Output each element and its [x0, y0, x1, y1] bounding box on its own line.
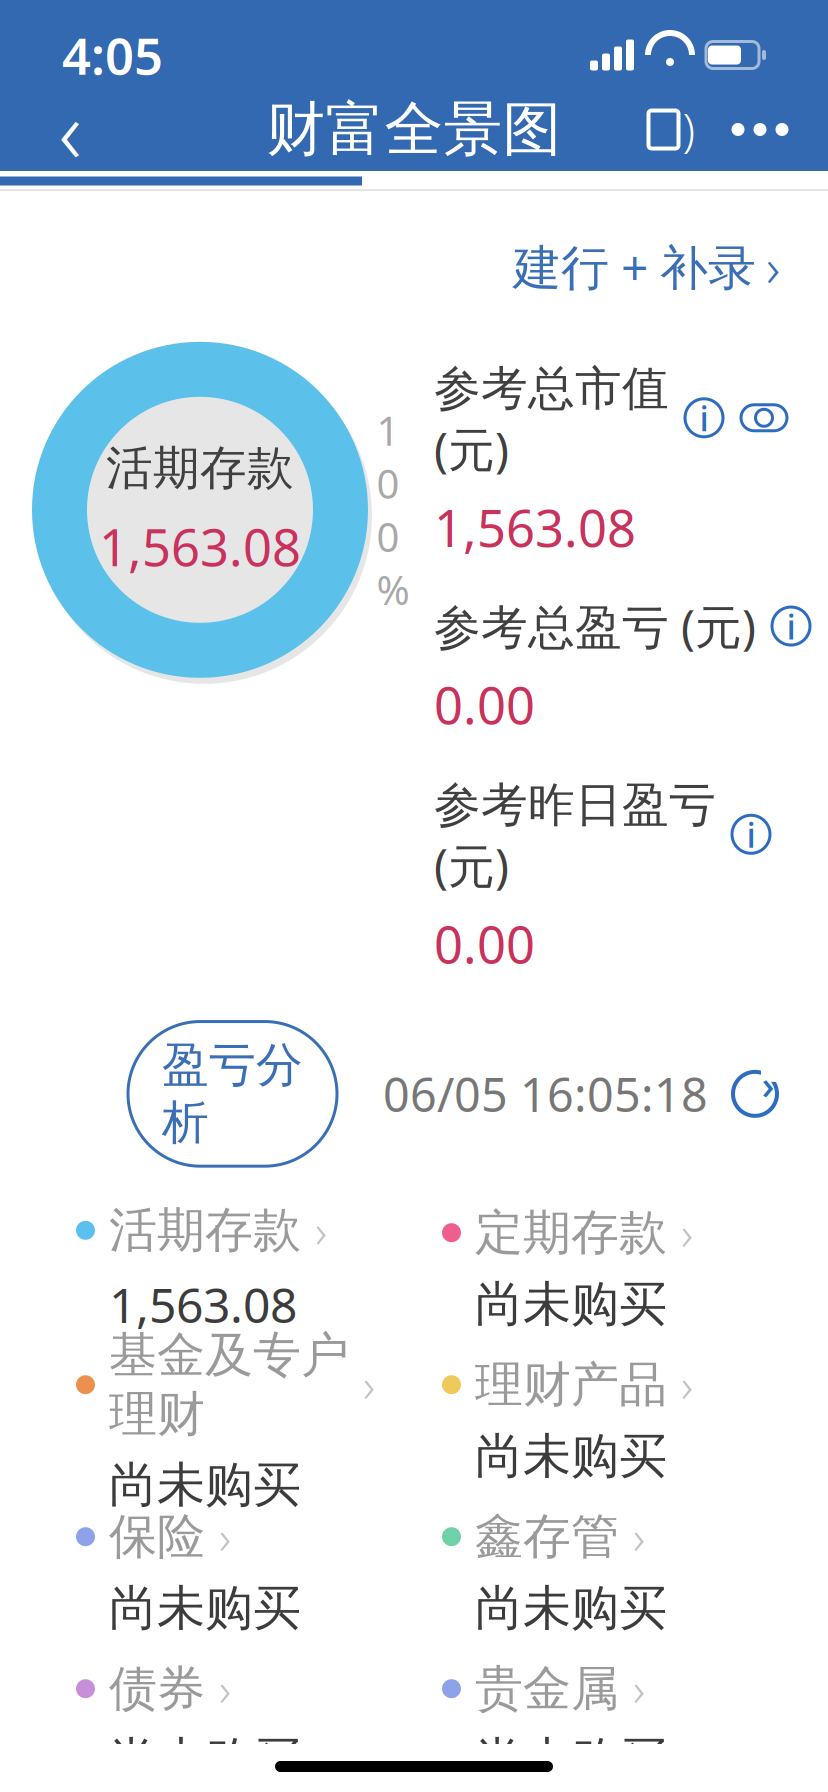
button[interactable]: 更多 [714, 88, 806, 170]
staticText: 06/05 16:05:18 [383, 1063, 708, 1125]
staticText: 尚未购买 [475, 1275, 667, 1334]
staticText: 贵金属 [475, 1659, 619, 1718]
button[interactable]: 基金及专户理财 [76, 1364, 442, 1476]
staticText: › [363, 1355, 375, 1415]
button[interactable]: 盈亏分析 [128, 1021, 337, 1166]
staticText: 1,563.08 [109, 1272, 297, 1336]
staticText: 0.00 [434, 910, 535, 978]
staticText: 活期存款 [109, 1201, 301, 1260]
staticText: 尚未购买 [475, 1731, 667, 1790]
button[interactable]: 定期存款 [442, 1212, 808, 1324]
staticText: › [219, 1507, 231, 1567]
staticText: 尚未购买 [109, 1579, 301, 1638]
button[interactable]: 说明 [770, 605, 812, 647]
staticText: 参考总市值 (元) [434, 356, 669, 480]
button[interactable]: 贵金属 [442, 1668, 808, 1780]
staticText: 尚未购买 [475, 1579, 667, 1638]
staticText: 100% [376, 404, 409, 616]
staticText: 基金及专户理财 [109, 1326, 349, 1444]
staticText: ) [682, 99, 695, 160]
button[interactable]: 说明 [730, 813, 772, 855]
staticText: 建行 + 补录 [513, 234, 756, 298]
staticText: 活期存款 [106, 439, 294, 497]
staticText: i [786, 603, 795, 649]
staticText: 鑫存管 [475, 1507, 619, 1566]
staticText: 参考昨日盈亏 (元) [434, 772, 716, 896]
button[interactable]: 活期存款 [76, 1212, 442, 1324]
staticText: 债券 [109, 1659, 205, 1718]
staticText: › [315, 1200, 327, 1260]
staticText: 保险 [109, 1507, 205, 1566]
staticText: › [219, 1659, 231, 1719]
staticText: 财富全景图 [266, 93, 561, 166]
staticText: 定期存款 [475, 1203, 667, 1262]
staticText: › [681, 1203, 693, 1263]
staticText: 1,563.08 [434, 494, 636, 561]
button[interactable]: 理财产品 [442, 1364, 808, 1476]
button[interactable]: 刷新 [708, 1069, 828, 1119]
button[interactable]: 债券 [76, 1668, 442, 1780]
button[interactable]: 语音播报 [630, 88, 714, 170]
button[interactable]: 说明 [683, 397, 725, 439]
staticText: 尚未购买 [109, 1731, 301, 1790]
button[interactable]: 返回 [22, 88, 118, 170]
staticText: 盈亏分析 [162, 1036, 303, 1151]
staticText: 理财产品 [475, 1355, 667, 1414]
button[interactable]: 建行 + 补录 [513, 213, 828, 320]
staticText: 尚未购买 [475, 1427, 667, 1486]
staticText: 4:05 [62, 21, 163, 89]
button[interactable]: 保险 [76, 1516, 442, 1628]
staticText: ‹ [58, 71, 81, 188]
staticText: 参考总盈亏 (元) [434, 595, 756, 657]
staticText: › [766, 231, 780, 302]
staticText: › [761, 1057, 774, 1110]
staticText: 0.00 [434, 671, 535, 738]
staticText: i [746, 811, 755, 857]
staticText: › [633, 1507, 645, 1567]
button[interactable]: 隐藏金额 [739, 397, 789, 439]
staticText: 尚未购买 [109, 1456, 301, 1515]
button[interactable]: 鑫存管 [442, 1516, 808, 1628]
staticText: i [699, 395, 708, 441]
staticText: › [681, 1355, 693, 1415]
staticText: › [633, 1659, 645, 1719]
staticText: 1,563.08 [99, 513, 301, 580]
